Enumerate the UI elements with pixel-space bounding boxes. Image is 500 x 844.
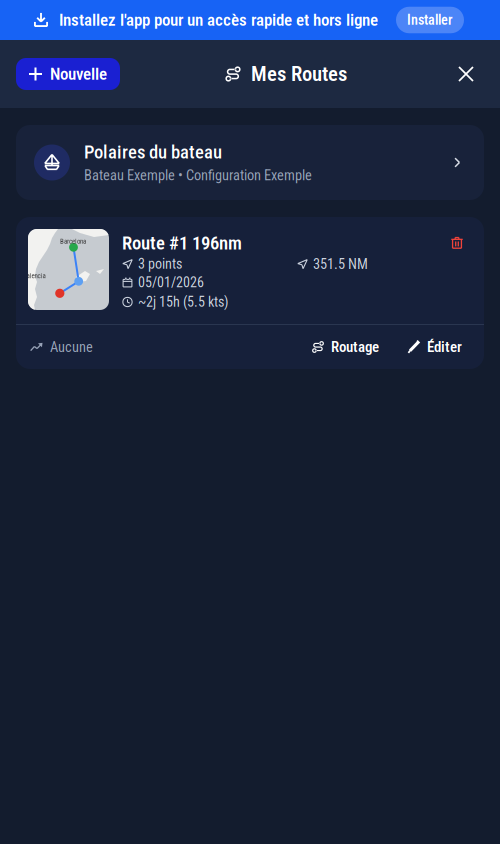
- button[interactable]: Installez l'app pour un accès rapide et …: [0, 0, 500, 40]
- button[interactable]: Polaires du bateau: [16, 125, 484, 200]
- staticText: alencia: [26, 272, 45, 280]
- staticText: Éditer: [427, 338, 462, 356]
- staticText: Mes Routes: [251, 62, 347, 86]
- staticText: Installer: [407, 12, 453, 28]
- staticText: Installez l'app pour un accès rapide et …: [59, 10, 378, 30]
- staticText: Aucune: [50, 339, 93, 355]
- staticText: Nouvelle: [50, 64, 107, 84]
- button[interactable]: Nouvelle: [16, 58, 120, 90]
- staticText: Barcelona: [60, 237, 86, 245]
- staticText: ~2j 15h (5.5 kts): [138, 294, 229, 310]
- staticText: 351.5 NM: [313, 256, 368, 272]
- staticText: Routage: [331, 338, 379, 356]
- staticText: Bateau Exemple • Configuration Exemple: [84, 167, 312, 184]
- staticText: Polaires du bateau: [84, 141, 222, 163]
- staticText: 3 points: [138, 256, 182, 272]
- staticText: 05/01/2026: [138, 274, 204, 291]
- button[interactable]: Fermer: [451, 59, 481, 89]
- button[interactable]: Éditer: [407, 332, 462, 362]
- button[interactable]: Routage: [311, 332, 379, 362]
- staticText: Route #1 196nm: [122, 232, 242, 254]
- button[interactable]: Supprimer: [444, 233, 470, 253]
